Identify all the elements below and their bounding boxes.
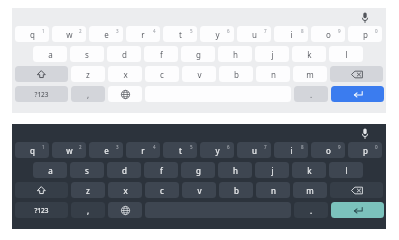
button[interactable]: r <box>126 142 160 158</box>
button[interactable]: m <box>293 66 327 82</box>
button[interactable]: Change language <box>108 202 142 218</box>
button[interactable]: Voice input <box>356 11 374 24</box>
button[interactable]: s <box>70 162 104 178</box>
staticText: v <box>197 69 202 80</box>
button[interactable]: o <box>311 142 345 158</box>
button[interactable]: w <box>52 26 86 42</box>
button[interactable]: Backspace <box>330 182 383 198</box>
button[interactable]: p <box>348 142 382 158</box>
button[interactable]: u <box>237 26 271 42</box>
button[interactable]: Period <box>294 86 328 102</box>
button[interactable]: e <box>89 142 123 158</box>
button[interactable]: t <box>163 142 197 158</box>
button[interactable]: Comma <box>71 86 105 102</box>
button[interactable]: n <box>256 66 290 82</box>
button[interactable]: Period <box>294 202 328 218</box>
button[interactable]: a <box>33 46 67 62</box>
button[interactable]: Backspace <box>330 66 383 82</box>
staticText: f <box>160 165 163 176</box>
button[interactable]: Change language <box>108 86 142 102</box>
button[interactable]: Enter <box>331 202 384 218</box>
button[interactable]: n <box>256 182 290 198</box>
button[interactable]: h <box>218 46 252 62</box>
button[interactable]: z <box>71 182 105 198</box>
button[interactable]: x <box>108 182 142 198</box>
staticText: 8 <box>301 28 304 34</box>
button[interactable]: f <box>144 46 178 62</box>
staticText: g <box>196 165 201 176</box>
staticText: 2 <box>79 28 82 34</box>
button[interactable]: g <box>181 162 215 178</box>
button[interactable]: v <box>182 182 216 198</box>
staticText: u <box>252 29 257 40</box>
staticText: 0 <box>375 28 378 34</box>
button[interactable]: y <box>200 26 234 42</box>
staticText: o <box>326 29 331 40</box>
staticText: s <box>85 49 89 60</box>
staticText: w <box>66 145 73 156</box>
button[interactable]: Symbols <box>15 86 68 102</box>
staticText: i <box>290 29 293 40</box>
staticText: c <box>160 69 164 80</box>
staticText: 8 <box>301 144 304 150</box>
button[interactable]: w <box>52 142 86 158</box>
button[interactable]: Shift <box>15 182 68 198</box>
button[interactable]: c <box>145 66 179 82</box>
button[interactable]: x <box>108 66 142 82</box>
button[interactable]: f <box>144 162 178 178</box>
button[interactable]: y <box>200 142 234 158</box>
button[interactable]: c <box>145 182 179 198</box>
staticText: x <box>123 69 128 80</box>
button[interactable]: t <box>163 26 197 42</box>
staticText: 2 <box>79 144 82 150</box>
button[interactable]: h <box>218 162 252 178</box>
button[interactable]: s <box>70 46 104 62</box>
button[interactable]: d <box>107 46 141 62</box>
button[interactable]: Enter <box>331 86 384 102</box>
button[interactable]: q <box>15 26 49 42</box>
button[interactable]: r <box>126 26 160 42</box>
button[interactable]: i <box>274 142 308 158</box>
staticText: m <box>306 69 314 80</box>
button[interactable]: k <box>292 46 326 62</box>
button[interactable]: Symbols <box>15 202 68 218</box>
staticText: 0 <box>375 144 378 150</box>
staticText: k <box>307 49 312 60</box>
staticText: t <box>179 29 182 40</box>
staticText: i <box>290 145 293 156</box>
button[interactable]: k <box>292 162 326 178</box>
button[interactable]: q <box>15 142 49 158</box>
button[interactable]: Comma <box>71 202 105 218</box>
staticText: 4 <box>153 28 156 34</box>
staticText: f <box>160 49 163 60</box>
button[interactable]: v <box>182 66 216 82</box>
staticText: h <box>233 49 238 60</box>
staticText: e <box>104 145 109 156</box>
staticText: w <box>66 29 73 40</box>
button[interactable]: o <box>311 26 345 42</box>
button[interactable]: a <box>33 162 67 178</box>
button[interactable]: b <box>219 66 253 82</box>
button[interactable]: Voice input <box>356 127 374 140</box>
button[interactable]: m <box>293 182 327 198</box>
button[interactable]: g <box>181 46 215 62</box>
button[interactable]: l <box>329 46 363 62</box>
staticText: n <box>271 185 276 196</box>
button[interactable]: j <box>255 46 289 62</box>
button[interactable]: j <box>255 162 289 178</box>
button[interactable]: i <box>274 26 308 42</box>
button[interactable]: d <box>107 162 141 178</box>
button[interactable]: l <box>329 162 363 178</box>
button[interactable]: Shift <box>15 66 68 82</box>
staticText: 4 <box>153 144 156 150</box>
staticText: a <box>48 165 53 176</box>
button[interactable]: z <box>71 66 105 82</box>
button[interactable]: u <box>237 142 271 158</box>
staticText: z <box>86 185 90 196</box>
button[interactable]: e <box>89 26 123 42</box>
staticText: y <box>215 29 220 40</box>
button[interactable]: p <box>348 26 382 42</box>
button[interactable]: b <box>219 182 253 198</box>
